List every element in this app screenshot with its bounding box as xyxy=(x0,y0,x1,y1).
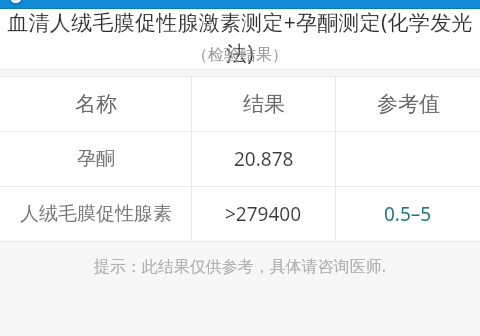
staticText: >279400 xyxy=(225,201,302,227)
staticText: 20.878 xyxy=(234,146,294,172)
staticText: 名称 xyxy=(75,91,117,117)
button[interactable]: 名称 xyxy=(0,77,480,131)
staticText: 孕酮 xyxy=(77,147,115,171)
staticText: 人绒毛膜促性腺素 xyxy=(20,202,172,226)
button[interactable]: 人绒毛膜促性腺素 xyxy=(0,187,480,241)
staticText: 血清人绒毛膜促性腺激素测定+孕酮测定(化学发光法) xyxy=(4,8,476,67)
staticText: 参考值 xyxy=(377,91,440,117)
staticText: （检验结果） xyxy=(0,45,480,65)
staticText: 0.5–5 xyxy=(384,201,432,227)
other: App logo xyxy=(0,0,480,9)
button[interactable]: 孕酮 xyxy=(0,132,480,186)
staticText: 提示：此结果仅供参考，具体请咨询医师. xyxy=(0,255,480,277)
staticText: 结果 xyxy=(243,91,285,117)
